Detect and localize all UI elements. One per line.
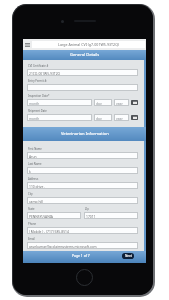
- staticText: Large Animal CVI (g7-001W5-93T2Q): [58, 42, 120, 47]
- button[interactable]: Arun: [27, 152, 138, 159]
- staticText: Address: [28, 177, 39, 181]
- button[interactable]: PENNSYLVANIA: [27, 212, 81, 219]
- button[interactable]: Menu: [23, 39, 32, 50]
- button[interactable]: 110 drive .: [27, 182, 138, 189]
- staticText: Veterinarian Information: [61, 131, 109, 137]
- staticText: year: [116, 116, 123, 120]
- button[interactable]: year: [114, 99, 129, 106]
- staticText: 21CO-001W5-93T2Q: [29, 71, 61, 75]
- button[interactable]: Pick date: [131, 115, 138, 120]
- staticText: Page 1 of 7: [72, 253, 90, 258]
- staticText: 110 drive .: [29, 184, 46, 188]
- staticText: General Details: [70, 52, 100, 58]
- staticText: day: [96, 101, 102, 105]
- button[interactable]: General Details: [23, 50, 146, 60]
- staticText: Entry Permit #:: [28, 79, 47, 83]
- staticText: Next: [125, 254, 132, 258]
- button[interactable]: year: [114, 114, 129, 121]
- staticText: State: [28, 207, 35, 211]
- button[interactable]: Next: [122, 253, 134, 259]
- staticText: camp hill: [29, 199, 43, 203]
- staticText: Email: [28, 237, 35, 241]
- staticText: Shipment Date: [28, 109, 47, 113]
- button[interactable]: 17011: [84, 212, 138, 219]
- staticText: 17011: [86, 214, 96, 218]
- button[interactable]: Pick date: [131, 100, 138, 105]
- staticText: CVI Certificate #: [28, 64, 49, 68]
- staticText: month: [29, 101, 40, 105]
- staticText: year: [116, 101, 123, 105]
- staticText: First Name: [28, 147, 42, 151]
- staticText: PENNSYLVANIA: [29, 214, 53, 218]
- staticText: day: [96, 116, 102, 120]
- button[interactable]: month: [27, 114, 92, 121]
- staticText: Arun: [29, 154, 37, 158]
- staticText: Inspection Date*: [28, 94, 50, 98]
- button[interactable]: Veterinarian Information: [23, 127, 146, 141]
- button[interactable]: camp hill: [27, 197, 138, 204]
- button[interactable]: month: [27, 99, 92, 106]
- staticText: Phone: [28, 222, 37, 226]
- staticText: ( Mobile ) - (717) 585-8514: [29, 229, 69, 233]
- button[interactable]: k: [27, 167, 138, 174]
- button[interactable]: 21CO-001W5-93T2Q: [27, 69, 138, 76]
- staticText: k: [29, 169, 31, 173]
- button[interactable]: ( Mobile ) - (717) 585-8514: [27, 227, 138, 234]
- staticText: month: [29, 116, 40, 120]
- button[interactable]: Large Animal CVI (g7-001W5-93T2Q): [32, 41, 145, 48]
- staticText: Zip: [85, 207, 89, 211]
- button[interactable]: day: [94, 99, 112, 106]
- staticText: City: [28, 192, 33, 196]
- button[interactable]: day: [94, 114, 112, 121]
- staticText: arunkumar@acclaimsystems.microsoft.com: [29, 244, 97, 248]
- button[interactable]: arunkumar@acclaimsystems.microsoft.com: [27, 242, 138, 249]
- staticText: Last Name: [28, 162, 42, 166]
- button[interactable]: [27, 84, 138, 91]
